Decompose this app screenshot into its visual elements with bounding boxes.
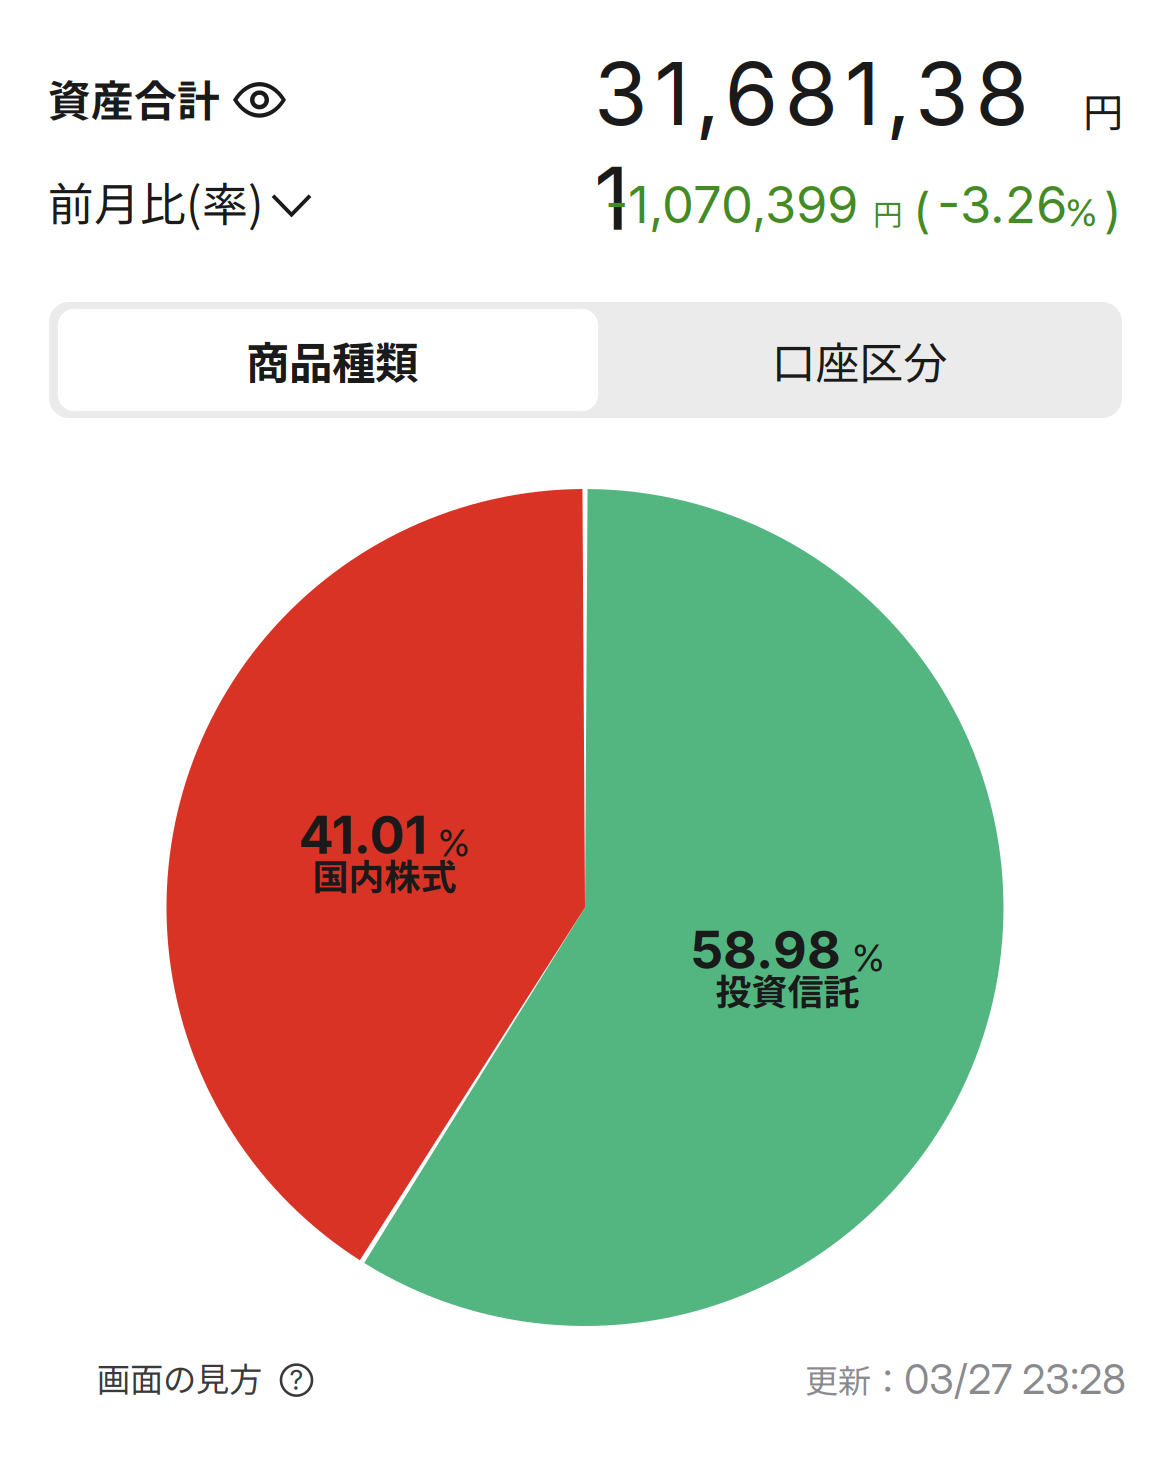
staticText: 画面の見方 (97, 1353, 262, 1401)
staticText: 国内株式 (312, 848, 456, 900)
staticText: -3.26 (937, 174, 1067, 235)
staticText: 58.98 (690, 918, 841, 981)
staticText: -1,070,399 (605, 174, 858, 235)
button[interactable]: 資産合計の表示を切り替え (48, 61, 286, 135)
staticText: 前月比(率) (48, 168, 264, 234)
staticText: % (852, 935, 885, 980)
staticText: 商品種類 (246, 328, 418, 391)
button[interactable]: 画面の見方 (97, 1349, 313, 1405)
staticText: 円 (873, 192, 902, 234)
staticText: % (437, 820, 470, 865)
staticText: 資産合計 (48, 67, 220, 129)
button[interactable]: 前月比(率) – 比較期間を選択 (48, 162, 312, 240)
staticText: 円 (1083, 81, 1123, 139)
staticText: % (1065, 190, 1098, 235)
staticText: ? (289, 1364, 303, 1396)
staticText: 03/27 23:28 (904, 1354, 1126, 1404)
staticText: 41.01 (298, 803, 426, 866)
staticText: ( (913, 181, 931, 239)
staticText: ) (1104, 181, 1122, 239)
staticText: 31,681,381 (594, 41, 1070, 146)
staticText: 口座区分 (771, 328, 947, 392)
button[interactable]: 口座区分 (598, 309, 1113, 411)
staticText: 投資信託 (715, 963, 859, 1015)
staticText: 更新： (805, 1355, 904, 1403)
button[interactable]: 商品種類 (58, 309, 598, 411)
